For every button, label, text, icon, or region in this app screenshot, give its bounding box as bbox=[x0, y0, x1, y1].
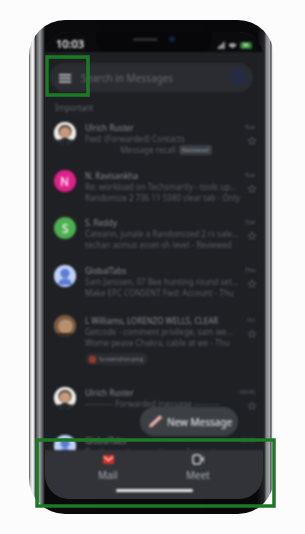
staticText: GlobalTabs bbox=[85, 265, 127, 276]
staticText: S. Reddy bbox=[85, 217, 118, 228]
staticText: Tue bbox=[245, 123, 256, 131]
staticText: GlobalTabs bbox=[85, 435, 127, 446]
button[interactable]: L Williams, LORENZO WELLS, CLEAR bbox=[45, 308, 263, 380]
staticText: Make EPC CONSENT Fwd: Account - Thu bbox=[85, 287, 234, 298]
button[interactable]: N bbox=[45, 163, 263, 210]
staticText: ----------- Forwarded message ---------- bbox=[85, 398, 220, 409]
staticText: Search in Messages bbox=[81, 71, 174, 85]
staticText: Re: the next generation update set... bbox=[85, 446, 222, 457]
button[interactable]: Ulrich Ruster bbox=[45, 115, 263, 163]
staticText: Fri bbox=[248, 316, 256, 324]
button[interactable]: GlobalTabs bbox=[45, 258, 263, 308]
staticText: Fwd: (Forwarded) Contacts bbox=[85, 133, 185, 144]
staticText: Getcode - comment privilege, sam we... bbox=[85, 326, 233, 337]
staticText: New Message bbox=[167, 415, 233, 429]
button[interactable]: GlobalTabs bbox=[45, 428, 263, 476]
staticText: Reviewed bbox=[182, 146, 209, 154]
staticText: Wome pease Chakra, cable at we - Thu bbox=[85, 337, 230, 348]
staticText: 10:03 bbox=[56, 36, 85, 51]
button[interactable]: Mail bbox=[82, 450, 134, 482]
staticText: N bbox=[60, 173, 70, 189]
staticText: 09:45 bbox=[240, 388, 256, 396]
button[interactable]: Meet bbox=[170, 450, 226, 482]
staticText: N. Ravisankha bbox=[85, 170, 138, 181]
button[interactable]: Account bbox=[230, 69, 247, 86]
staticText: Re: workload on Techsmartly - tools up..… bbox=[85, 181, 237, 192]
staticText: Mail bbox=[98, 468, 118, 482]
button[interactable]: Ulrich Ruster bbox=[45, 380, 263, 428]
staticText: Tue bbox=[245, 218, 256, 226]
button[interactable]: New Message bbox=[140, 407, 238, 436]
staticText: L Williams, LORENZO WELLS, CLEAR bbox=[85, 315, 219, 326]
staticText: 02:30 bbox=[240, 436, 256, 444]
staticText: Message recall bbox=[85, 144, 176, 155]
staticText: Cateann, junale a Randomized 2 rs sale..… bbox=[85, 228, 239, 239]
staticText: Meet bbox=[186, 468, 210, 482]
staticText: Ulrich Ruster bbox=[85, 122, 134, 133]
staticText: Randomize 2 736 11 5980 clear tab - Only bbox=[85, 192, 240, 203]
staticText: Ulrich Ruster bbox=[85, 387, 134, 398]
staticText: 86 bbox=[243, 42, 249, 49]
staticText: Sam Janssen, 97 Bee hunting round set... bbox=[85, 276, 239, 287]
staticText: Thu bbox=[245, 266, 256, 274]
button[interactable]: S bbox=[45, 210, 263, 258]
staticText: Important bbox=[55, 102, 94, 113]
button[interactable]: Open navigation menu bbox=[50, 63, 79, 92]
staticText: S bbox=[62, 220, 69, 236]
staticText: Screenshot.png bbox=[99, 355, 144, 363]
staticText: techan acmus asset-sh level - Reviewed bbox=[85, 239, 232, 250]
staticText: Tue bbox=[245, 171, 256, 179]
